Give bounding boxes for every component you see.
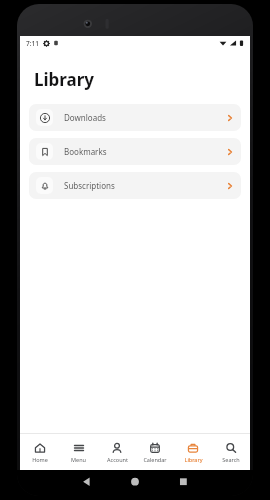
staticText: Subscriptions <box>64 180 115 191</box>
staticText: Downloads <box>64 112 106 123</box>
staticText: Search <box>222 456 240 463</box>
button[interactable]: Library <box>174 434 212 470</box>
staticText: Home <box>32 456 48 463</box>
staticText: 7:11 <box>26 39 39 48</box>
button[interactable]: Menu <box>59 434 98 470</box>
staticText: Account <box>107 456 128 463</box>
button[interactable]: Bookmarks <box>29 138 241 165</box>
button[interactable]: Account <box>98 434 136 470</box>
button[interactable]: Calendar <box>136 434 174 470</box>
staticText: Bookmarks <box>64 146 107 157</box>
staticText: Calendar <box>143 456 167 463</box>
staticText: Library <box>184 456 203 463</box>
button[interactable]: Search <box>212 434 250 470</box>
staticText: Menu <box>71 456 86 463</box>
button[interactable]: Subscriptions <box>29 172 241 199</box>
staticText: Library <box>34 68 95 91</box>
button[interactable]: Home <box>20 434 59 470</box>
button[interactable]: Downloads <box>29 104 241 131</box>
